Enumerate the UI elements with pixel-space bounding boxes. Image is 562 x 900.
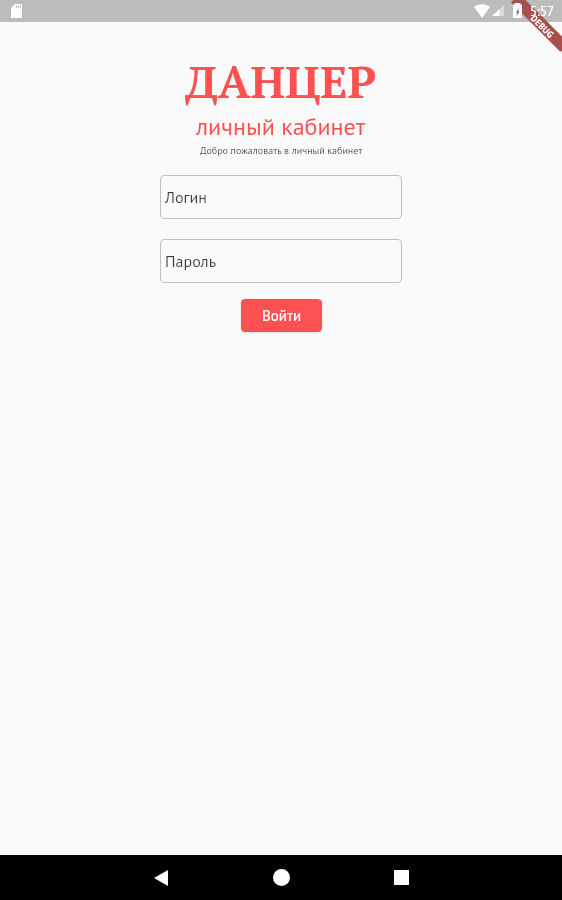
staticText: личный кабинет xyxy=(196,111,366,142)
button[interactable]: Пароль xyxy=(160,239,402,283)
staticText: Войти xyxy=(262,306,302,325)
staticText: Добро пожаловать в личный кабинет xyxy=(200,144,363,157)
button[interactable]: Recent apps xyxy=(371,855,431,900)
button[interactable]: Войти xyxy=(241,299,322,332)
button[interactable]: Home xyxy=(251,855,311,900)
staticText: 5:57 xyxy=(530,3,555,20)
staticText: Логин xyxy=(165,187,207,208)
button[interactable]: Back xyxy=(131,855,191,900)
staticText: Пароль xyxy=(165,251,217,272)
button[interactable]: Логин xyxy=(160,175,402,219)
staticText: ДАНЦЕР xyxy=(185,51,377,111)
staticText: DEBUG xyxy=(529,12,556,40)
